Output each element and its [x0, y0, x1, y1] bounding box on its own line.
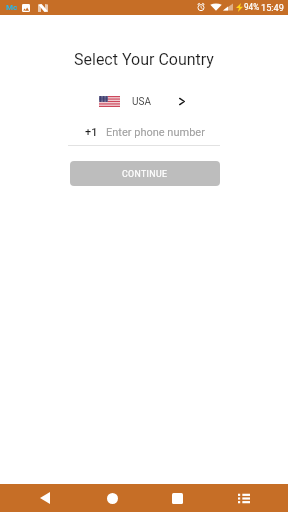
staticText: Mc	[6, 3, 18, 12]
button[interactable]: Home	[90, 484, 134, 512]
staticText: Select Your Country	[74, 50, 214, 69]
button[interactable]: CONTINUE	[70, 161, 220, 186]
staticText: 15:49	[261, 2, 284, 13]
button[interactable]: Menu	[222, 484, 266, 512]
staticText: Enter phone number	[106, 126, 205, 139]
button[interactable]: Recent apps	[155, 484, 199, 512]
staticText: CONTINUE	[122, 169, 168, 179]
staticText: 94%	[244, 2, 260, 12]
button[interactable]: Back	[23, 484, 67, 512]
button[interactable]: USA	[68, 95, 220, 108]
staticText: +1	[85, 126, 98, 139]
staticText: USA	[132, 96, 151, 108]
